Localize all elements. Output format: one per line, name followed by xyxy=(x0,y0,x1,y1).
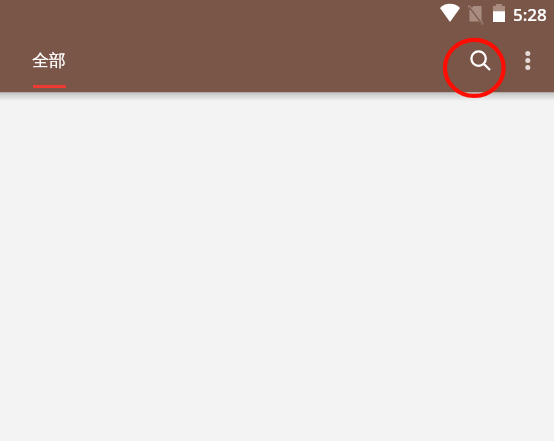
staticText: 全部 xyxy=(32,50,66,71)
other: No SIM card xyxy=(469,5,482,22)
other: Battery xyxy=(493,4,505,22)
button[interactable]: More options xyxy=(506,39,550,83)
button[interactable]: Search xyxy=(456,36,504,84)
button[interactable]: 全部 xyxy=(16,29,82,91)
staticText: 5:28 xyxy=(513,3,547,26)
other: Wi-Fi connected xyxy=(440,4,460,22)
